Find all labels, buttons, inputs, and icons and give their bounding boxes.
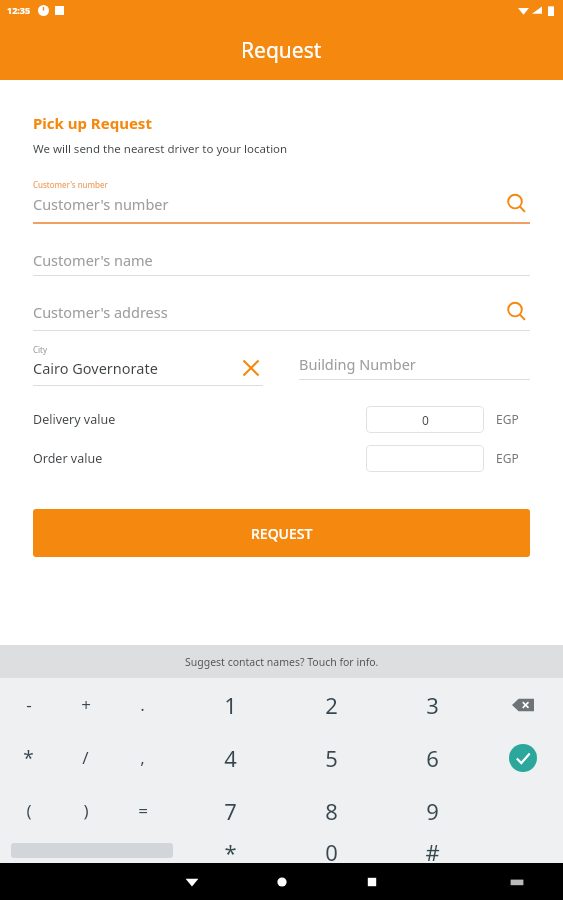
staticText: ( (26, 799, 32, 822)
staticText: + (81, 693, 91, 716)
button[interactable]: ( (0, 784, 57, 837)
staticText: City (33, 344, 48, 355)
staticText: 0 (422, 412, 429, 428)
staticText: / (82, 746, 89, 769)
button[interactable]: * (180, 837, 281, 863)
staticText: , (140, 746, 145, 769)
staticText: * (224, 837, 237, 863)
other: Search (504, 299, 530, 325)
staticText: = (138, 799, 148, 822)
other: Search (504, 191, 530, 217)
button[interactable]: 9 (382, 784, 483, 837)
staticText: Request (241, 36, 322, 65)
button[interactable]: 1 (180, 678, 281, 731)
button[interactable]: 8 (281, 784, 382, 837)
staticText: Cairo Governorate (33, 358, 239, 378)
other: Clear city (239, 356, 263, 380)
staticText: Customer's name (33, 250, 530, 270)
button[interactable]: Customer's name (33, 240, 530, 276)
staticText: REQUEST (251, 524, 313, 543)
staticText: 4 (224, 743, 237, 773)
button[interactable]: = (114, 784, 171, 837)
staticText: - (26, 693, 32, 716)
staticText: Suggest contact names? Touch for info. (185, 655, 379, 669)
button[interactable]: City (33, 344, 263, 386)
button[interactable]: REQUEST (33, 509, 530, 557)
button[interactable]: Space (0, 837, 180, 863)
button[interactable]: 7 (180, 784, 281, 837)
staticText: 0 (325, 837, 338, 863)
button[interactable]: 4 (180, 731, 281, 784)
button[interactable] (366, 445, 484, 472)
button[interactable]: Building Number (299, 344, 530, 380)
staticText: 2 (325, 690, 338, 720)
button[interactable]: + (57, 678, 114, 731)
staticText: 8 (325, 796, 338, 826)
button[interactable]: 6 (382, 731, 483, 784)
staticText: Pick up Request (33, 113, 152, 133)
staticText: We will send the nearest driver to your … (33, 141, 288, 157)
button[interactable]: # (382, 837, 483, 863)
staticText: Customer's number (33, 194, 504, 214)
button[interactable]: ) (57, 784, 114, 837)
staticText: * (23, 745, 34, 771)
button[interactable]: - (0, 678, 57, 731)
staticText: EGP (496, 411, 519, 427)
staticText: Building Number (299, 354, 530, 374)
button[interactable]: Back (184, 874, 200, 890)
staticText: 7 (224, 796, 237, 826)
button[interactable]: Customer's number (33, 179, 530, 224)
button[interactable]: 2 (281, 678, 382, 731)
button[interactable]: Switch keyboard (509, 874, 525, 890)
staticText: EGP (496, 450, 519, 466)
button[interactable]: Recents (365, 875, 379, 889)
button[interactable]: Home (275, 875, 289, 889)
button[interactable]: Confirm (509, 744, 537, 772)
button[interactable]: 5 (281, 731, 382, 784)
staticText: Delivery value (33, 411, 366, 428)
staticText: 12:35 (7, 4, 31, 16)
staticText: ) (83, 799, 89, 822)
staticText: Order value (33, 450, 366, 467)
staticText: 5 (325, 743, 338, 773)
button[interactable]: Suggest contact names? Touch for info. (0, 645, 563, 678)
staticText: Customer's address (33, 302, 504, 322)
staticText: 1 (224, 690, 237, 720)
button[interactable]: 0 (281, 837, 382, 863)
button[interactable]: Backspace (512, 694, 534, 716)
staticText: Customer's number (33, 179, 108, 190)
staticText: 9 (426, 796, 439, 826)
button[interactable]: . (114, 678, 171, 731)
staticText: 6 (426, 743, 439, 773)
button[interactable]: * (0, 731, 57, 784)
button[interactable]: , (114, 731, 171, 784)
staticText: . (140, 693, 145, 716)
button[interactable]: Customer's address (33, 289, 530, 331)
staticText: 3 (426, 690, 439, 720)
button[interactable]: / (57, 731, 114, 784)
button[interactable]: 3 (382, 678, 483, 731)
staticText: # (425, 837, 440, 863)
button[interactable]: 0 (366, 406, 484, 433)
